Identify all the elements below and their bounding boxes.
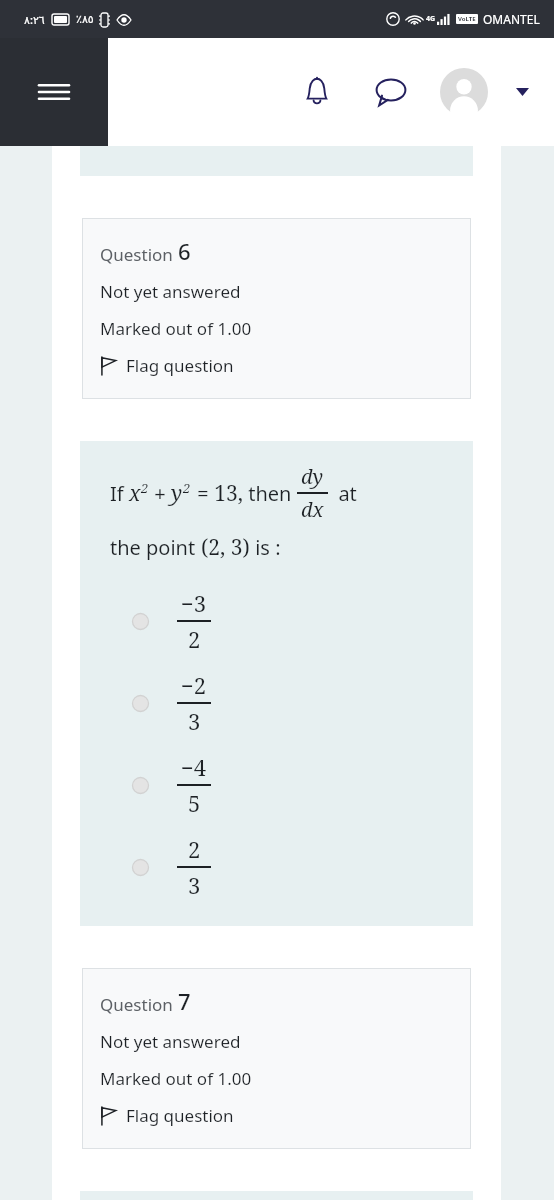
staticText: (2, 3) xyxy=(201,533,250,562)
staticText: = 13, xyxy=(197,479,243,508)
staticText: 2 xyxy=(141,479,149,497)
staticText: 6 xyxy=(178,236,191,266)
button[interactable]: −4 xyxy=(110,752,473,818)
staticText: ٪٨٥ xyxy=(76,13,94,26)
staticText: Marked out of 1.00 xyxy=(100,1067,252,1090)
staticText: VoLTE xyxy=(458,15,476,23)
staticText: 2 xyxy=(188,834,201,864)
staticText: 4G xyxy=(426,14,436,24)
staticText: dy xyxy=(301,463,324,490)
staticText: x xyxy=(129,479,141,508)
button[interactable]: Question xyxy=(82,218,471,399)
staticText: Marked out of 1.00 xyxy=(100,317,252,340)
staticText: 2 xyxy=(188,624,201,654)
staticText: Flag question xyxy=(126,1104,234,1127)
staticText: the point xyxy=(110,534,201,561)
staticText: is : xyxy=(250,534,281,561)
staticText: If xyxy=(110,480,129,507)
staticText: at xyxy=(328,480,357,507)
staticText: ٨:٢٦ xyxy=(24,12,45,27)
staticText: Flag question xyxy=(126,354,234,377)
button[interactable]: 2 xyxy=(110,834,473,900)
staticText: Not yet answered xyxy=(100,1030,241,1053)
staticText: −3 xyxy=(181,588,207,618)
staticText: 5 xyxy=(188,788,201,818)
staticText: Question xyxy=(100,993,178,1016)
staticText: Question xyxy=(100,243,178,266)
staticText: −2 xyxy=(181,670,207,700)
button[interactable]: Question xyxy=(82,968,471,1149)
button[interactable]: −2 xyxy=(110,670,473,736)
staticText: OMANTEL xyxy=(483,11,540,27)
button[interactable]: Menu xyxy=(0,38,108,146)
staticText: 7 xyxy=(178,986,191,1016)
button[interactable]: User menu xyxy=(502,72,542,112)
staticText: Not yet answered xyxy=(100,280,241,303)
button[interactable]: Messages xyxy=(364,65,418,119)
staticText: 3 xyxy=(188,706,201,736)
button[interactable]: Flag question xyxy=(100,1104,234,1127)
button[interactable]: Notifications xyxy=(290,65,344,119)
staticText: + xyxy=(149,480,171,507)
staticText: y xyxy=(171,479,183,508)
staticText: 2 xyxy=(183,479,191,497)
staticText: 3 xyxy=(188,870,201,900)
staticText: −4 xyxy=(181,752,207,782)
button[interactable]: Profile xyxy=(436,64,492,120)
button[interactable]: Flag question xyxy=(100,354,234,377)
button[interactable]: −3 xyxy=(110,588,473,654)
staticText: then xyxy=(243,480,297,507)
staticText: dx xyxy=(301,496,324,523)
